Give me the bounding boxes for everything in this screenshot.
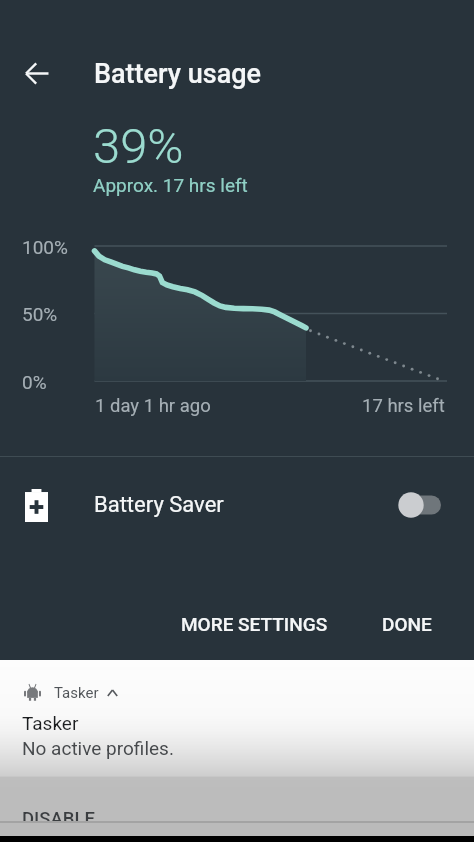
staticText: 100% (22, 236, 68, 258)
staticText: Tasker (22, 712, 79, 734)
staticText: 0% (22, 371, 47, 393)
button[interactable]: DONE (367, 601, 447, 647)
button[interactable]: Battery Saver (389, 479, 453, 531)
staticText: MORE SETTINGS (181, 613, 328, 635)
button[interactable]: Back (13, 49, 61, 97)
staticText: DONE (382, 613, 432, 635)
staticText: No active profiles. (22, 737, 174, 759)
staticText: Tasker (54, 684, 99, 702)
staticText: Battery Saver (94, 492, 224, 518)
button[interactable]: MORE SETTINGS (166, 601, 343, 647)
staticText: Approx. 17 hrs left (93, 174, 248, 196)
button[interactable]: Tasker (0, 669, 474, 717)
staticText: 1 day 1 hr ago (95, 395, 211, 417)
staticText: DISABLE (22, 808, 95, 830)
staticText: 50% (22, 303, 58, 325)
staticText: 39% (93, 118, 184, 175)
button[interactable]: Battery Saver (0, 460, 474, 550)
staticText: Battery usage (94, 58, 261, 90)
staticText: 17 hrs left (362, 395, 445, 417)
